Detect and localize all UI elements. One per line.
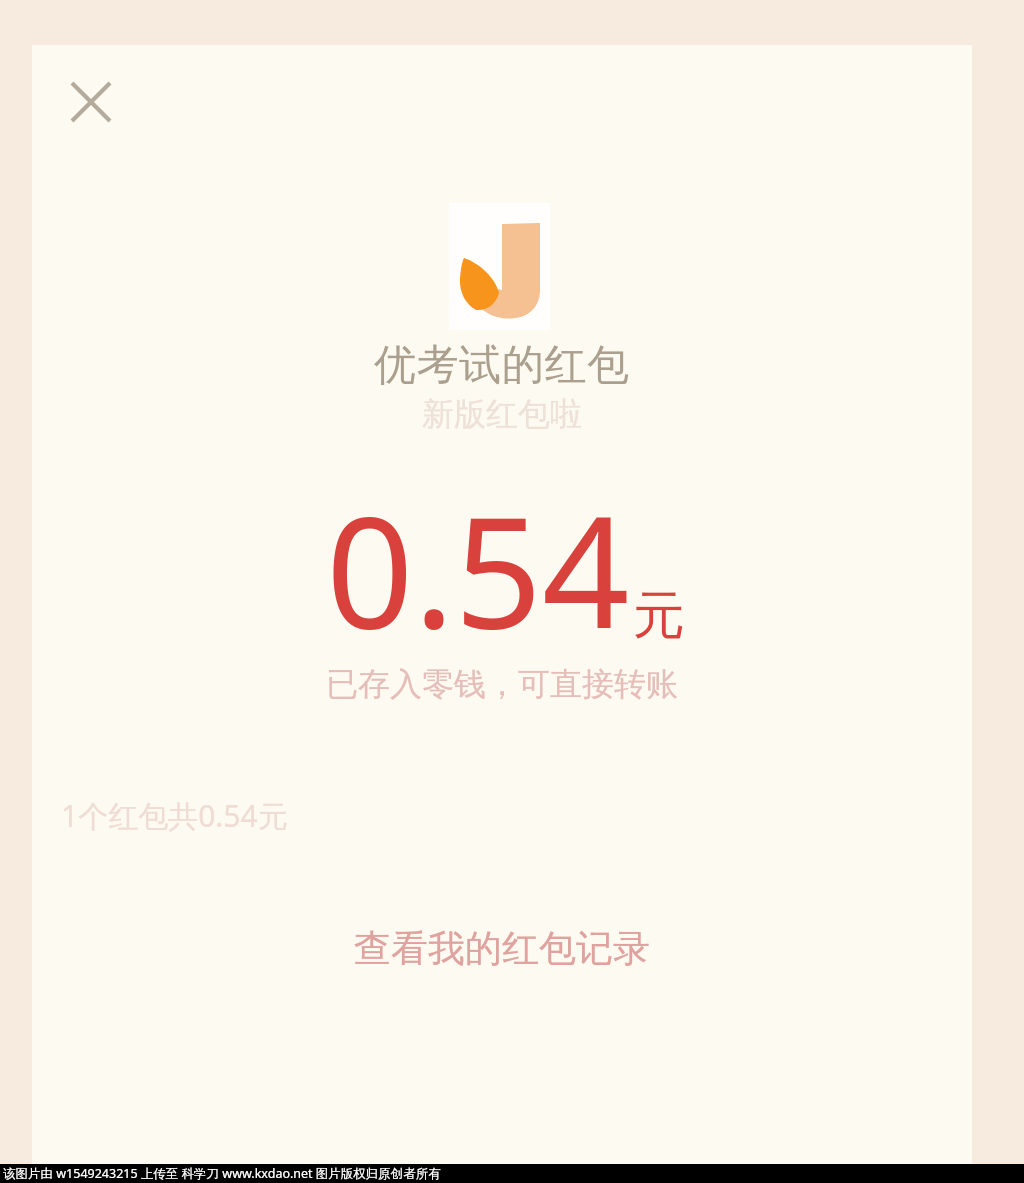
staticText: 元 <box>633 583 685 649</box>
staticText: 0.54 <box>326 464 630 672</box>
button[interactable]: 查看我的红包记录 <box>32 913 972 983</box>
staticText: 该图片由 w1549243215 上传至 科学刀 www.kxdao.net 图… <box>3 1165 441 1182</box>
staticText: 新版红包啦 <box>422 394 582 434</box>
staticText: 查看我的红包记录 <box>354 925 650 972</box>
staticText: 已存入零钱，可直接转账 <box>326 664 678 704</box>
staticText: 优考试的红包 <box>374 339 630 392</box>
button[interactable]: Close <box>57 68 125 136</box>
staticText: 1个红包共0.54元 <box>61 795 288 836</box>
